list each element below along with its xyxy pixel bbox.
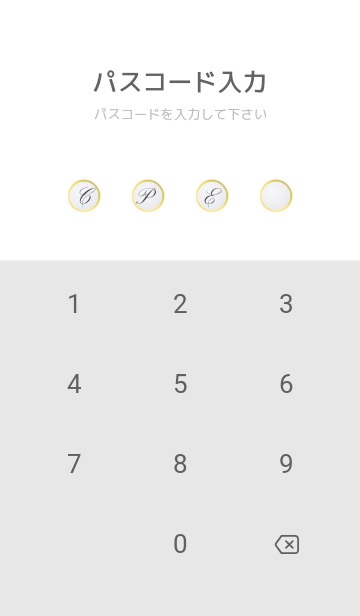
staticText: 9: [279, 449, 294, 479]
button[interactable]: 0: [127, 504, 233, 584]
button[interactable]: 4: [21, 344, 127, 424]
staticText: E: [204, 184, 216, 213]
button[interactable]: 8: [127, 424, 233, 504]
button[interactable]: 1: [21, 264, 127, 344]
staticText: P: [136, 184, 151, 213]
button[interactable]: 3: [233, 264, 339, 344]
staticText: パスコードを入力して下さい: [94, 105, 267, 124]
staticText: パスコード入力: [92, 64, 268, 99]
button[interactable]: 6: [233, 344, 339, 424]
staticText: 3: [279, 289, 294, 319]
button[interactable]: 5: [127, 344, 233, 424]
staticText: 1: [67, 289, 82, 319]
button[interactable]: 2: [127, 264, 233, 344]
button[interactable]: 9: [233, 424, 339, 504]
staticText: 4: [67, 369, 82, 399]
button[interactable]: Delete: [233, 504, 339, 584]
staticText: C: [76, 184, 91, 213]
staticText: 2: [173, 289, 188, 319]
staticText: 8: [173, 449, 188, 479]
staticText: 6: [279, 369, 294, 399]
staticText: 7: [67, 449, 82, 479]
button[interactable]: 7: [21, 424, 127, 504]
staticText: 5: [173, 369, 188, 399]
staticText: 0: [173, 529, 188, 559]
